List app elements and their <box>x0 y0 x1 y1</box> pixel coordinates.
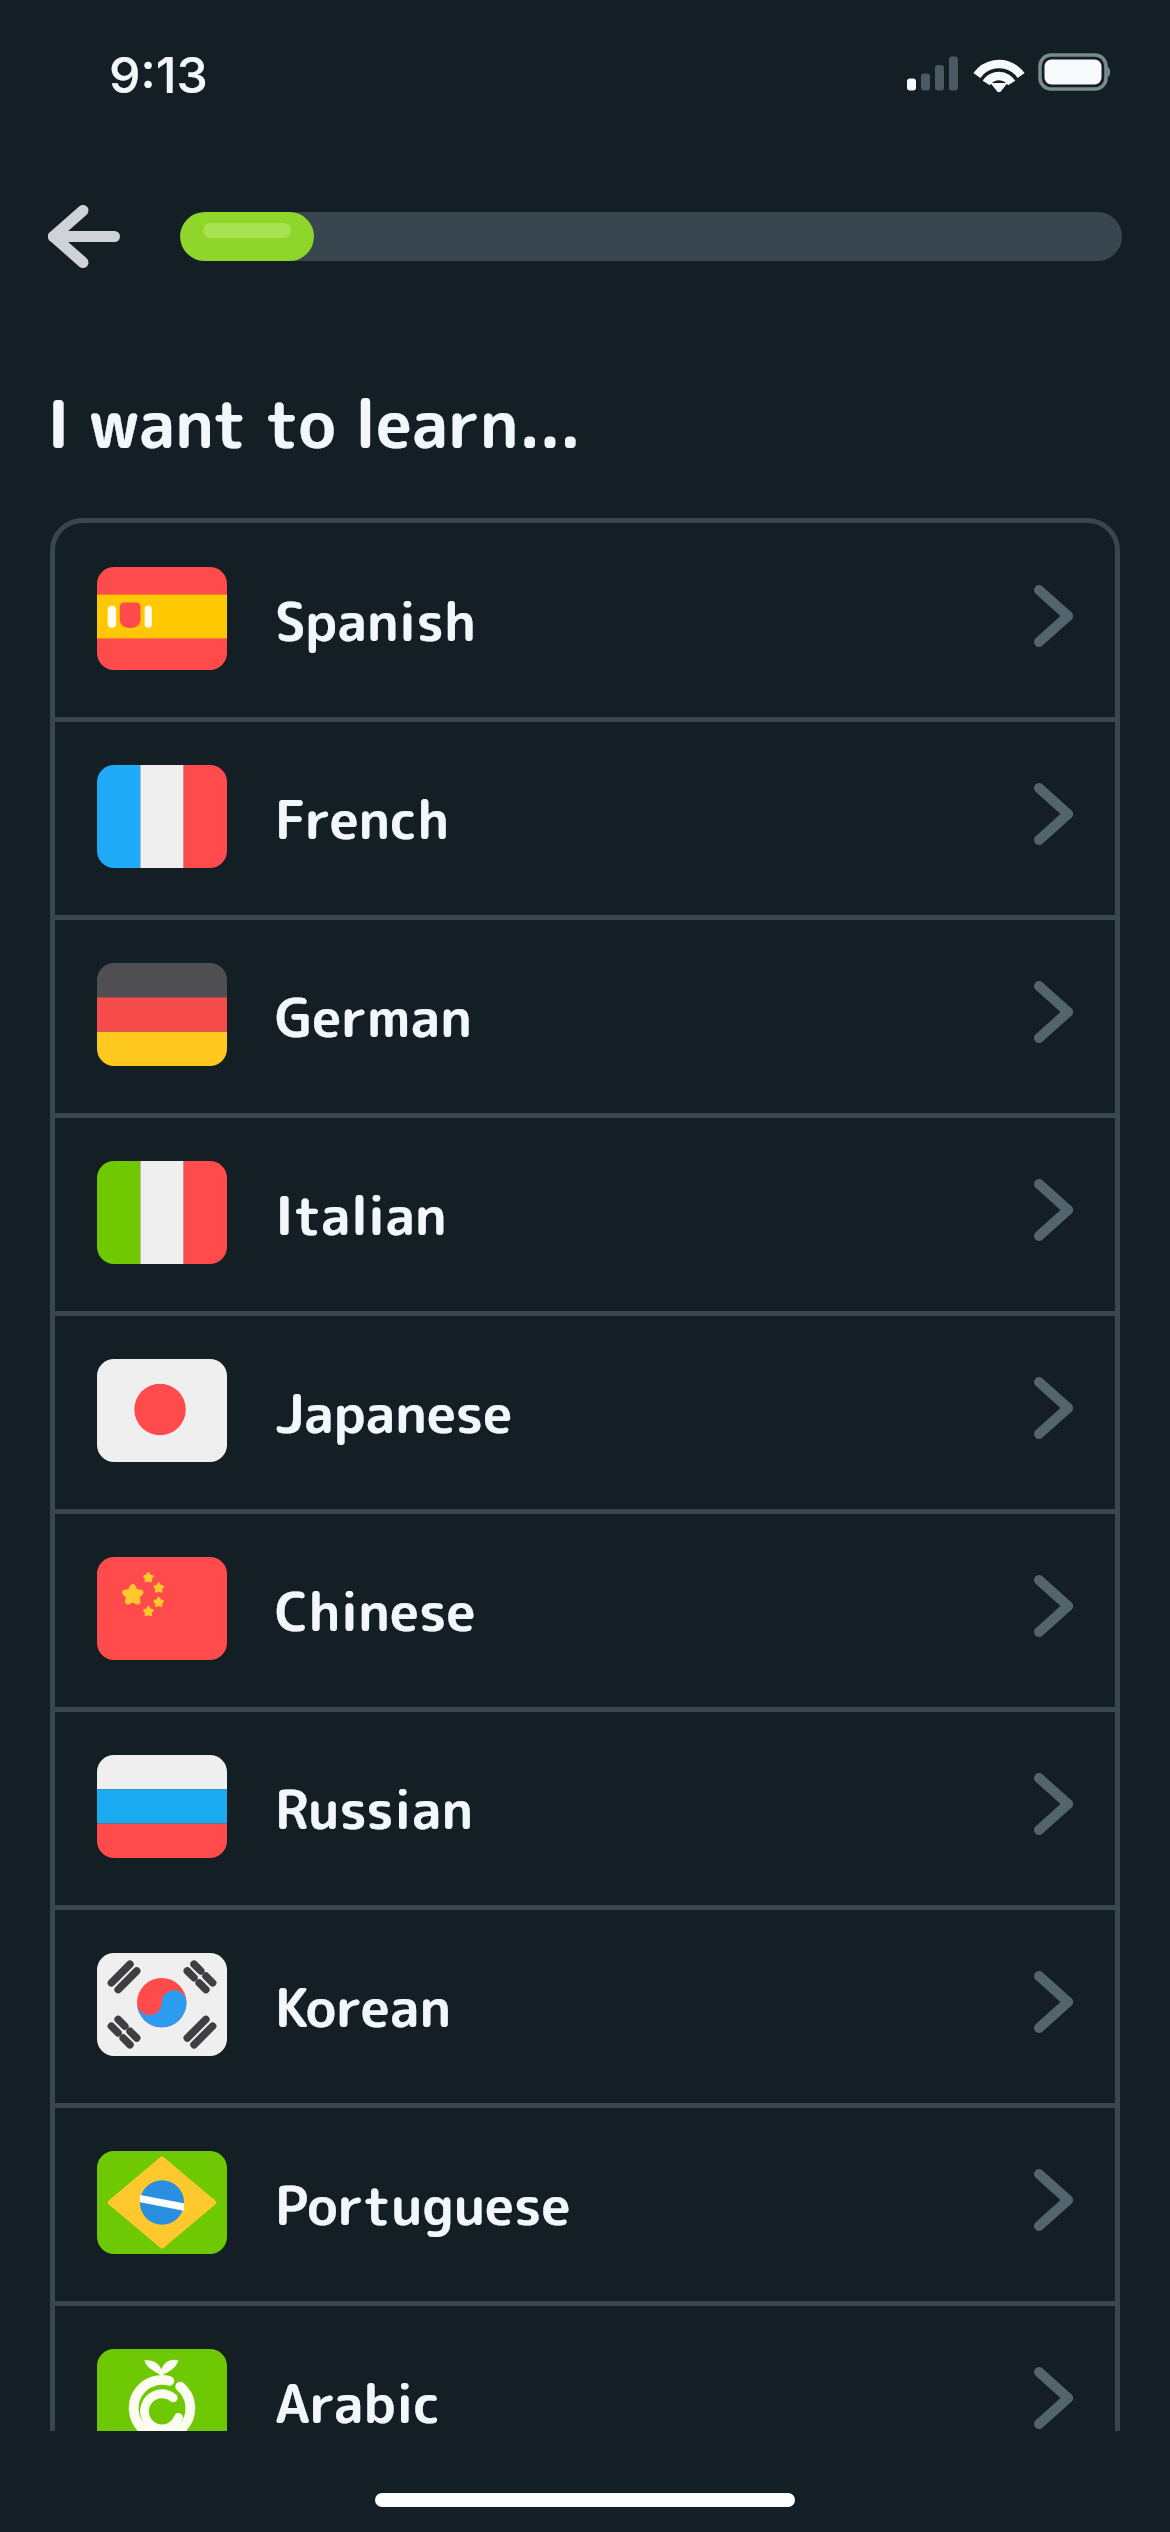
button[interactable]: Korean <box>50 1910 1120 2103</box>
button[interactable]: Portuguese <box>50 2108 1120 2301</box>
staticText: Chinese <box>275 1574 476 1648</box>
staticText: Arabic <box>275 2366 441 2431</box>
button[interactable]: Back <box>20 188 148 286</box>
button[interactable]: German <box>50 920 1120 1113</box>
staticText: I want to learn... <box>47 378 582 469</box>
staticText: 9:13 <box>109 45 208 105</box>
staticText: Spanish <box>275 584 476 658</box>
button[interactable]: French <box>50 722 1120 915</box>
button[interactable]: Arabic <box>50 2306 1120 2431</box>
button[interactable]: Japanese <box>50 1316 1120 1509</box>
staticText: Korean <box>275 1970 452 2044</box>
staticText: Japanese <box>275 1376 513 1450</box>
button[interactable]: Italian <box>50 1118 1120 1311</box>
button[interactable]: Russian <box>50 1712 1120 1905</box>
staticText: Russian <box>275 1772 474 1846</box>
staticText: French <box>275 782 449 856</box>
staticText: Portuguese <box>275 2168 571 2242</box>
button[interactable]: Chinese <box>50 1514 1120 1707</box>
staticText: Italian <box>275 1178 447 1252</box>
staticText: German <box>275 980 472 1054</box>
button[interactable]: Spanish <box>50 524 1120 717</box>
